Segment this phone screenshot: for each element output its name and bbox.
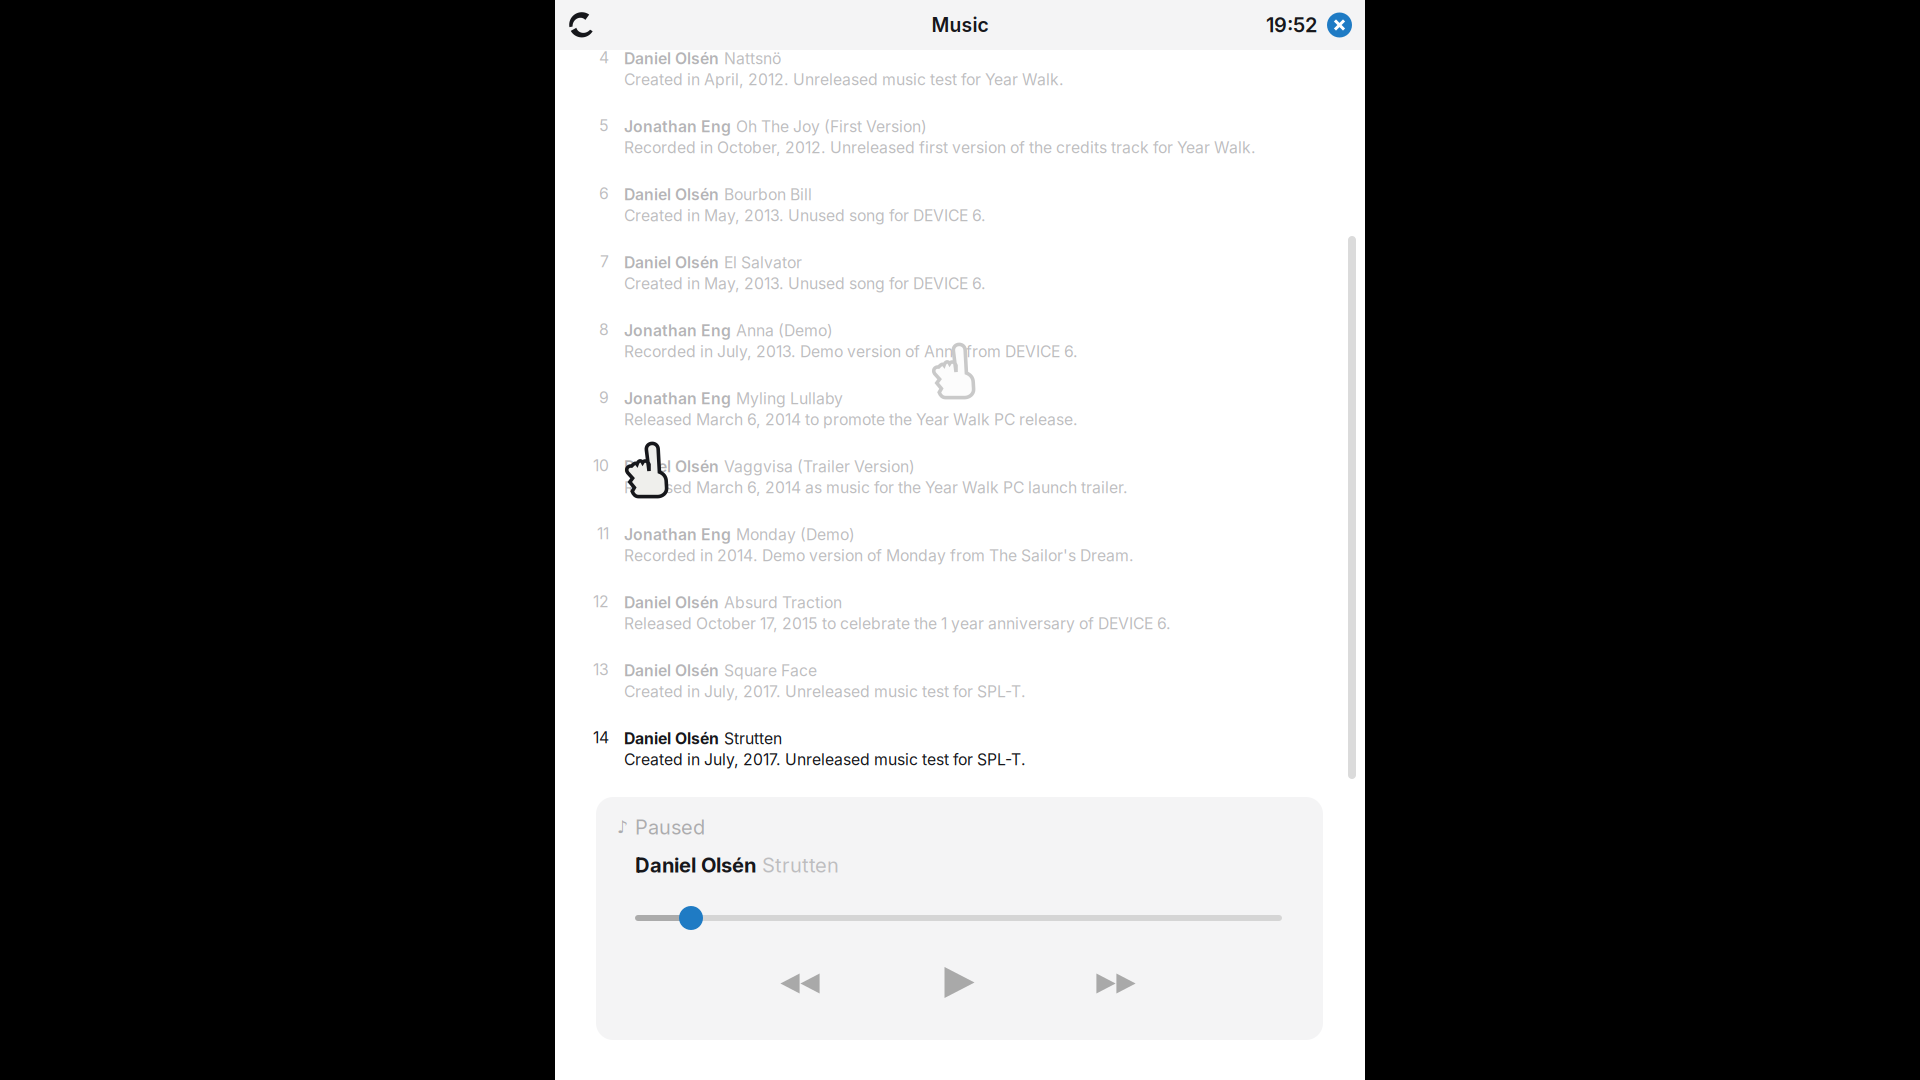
- staticText: Jonathan Eng: [624, 525, 731, 544]
- button[interactable]: Next track: [1080, 957, 1152, 1010]
- staticText: 14: [593, 728, 609, 747]
- button[interactable]: 7: [592, 252, 1345, 320]
- staticText: Paused: [635, 815, 705, 839]
- button[interactable]: 10: [592, 456, 1345, 524]
- staticText: 10: [593, 456, 609, 475]
- staticText: Recorded in July, 2013. Demo version of …: [624, 342, 1078, 361]
- staticText: Released October 17, 2015 to celebrate t…: [624, 614, 1171, 633]
- button[interactable]: 6: [592, 184, 1345, 252]
- staticText: Daniel Olsén: [624, 49, 719, 68]
- staticText: ♪: [617, 817, 628, 837]
- staticText: 7: [600, 252, 609, 271]
- staticText: Nattsnö: [724, 49, 781, 68]
- staticText: Released March 6, 2014 to promote the Ye…: [624, 410, 1078, 429]
- staticText: Released March 6, 2014 as music for the …: [624, 478, 1128, 497]
- button[interactable]: 5: [592, 116, 1345, 184]
- staticText: Daniel Olsén: [624, 253, 719, 272]
- staticText: Bourbon Bill: [724, 185, 812, 204]
- button[interactable]: 13: [592, 660, 1345, 728]
- staticText: 5: [599, 116, 609, 135]
- staticText: Myling Lullaby: [736, 389, 843, 408]
- staticText: Daniel Olsén: [624, 457, 719, 476]
- staticText: El Salvator: [724, 253, 802, 272]
- staticText: 13: [593, 660, 609, 679]
- staticText: Anna (Demo): [736, 321, 833, 340]
- staticText: Recorded in October, 2012. Unreleased fi…: [624, 138, 1256, 157]
- staticText: Strutten: [762, 853, 839, 877]
- button[interactable]: Play: [927, 950, 992, 1015]
- button[interactable]: 8: [592, 320, 1345, 388]
- staticText: Daniel Olsén: [624, 593, 719, 612]
- staticText: Square Face: [724, 661, 817, 680]
- staticText: 19:52: [1266, 13, 1317, 37]
- staticText: Jonathan Eng: [624, 389, 731, 408]
- button[interactable]: Previous track: [764, 957, 836, 1010]
- staticText: Daniel Olsén: [624, 661, 719, 680]
- button[interactable]: Reload: [555, 0, 605, 50]
- staticText: 8: [599, 320, 609, 339]
- button[interactable]: 14: [592, 728, 1345, 796]
- staticText: Jonathan Eng: [624, 321, 731, 340]
- staticText: Monday (Demo): [736, 525, 855, 544]
- staticText: 6: [599, 184, 609, 203]
- staticText: Created in May, 2013. Unused song for DE…: [624, 206, 986, 225]
- staticText: Oh The Joy (First Version): [736, 117, 927, 136]
- staticText: Recorded in 2014. Demo version of Monday…: [624, 546, 1134, 565]
- staticText: Created in July, 2017. Unreleased music …: [624, 750, 1026, 769]
- staticText: Music: [931, 13, 988, 37]
- staticText: 12: [593, 592, 609, 611]
- staticText: Daniel Olsén: [624, 185, 719, 204]
- button[interactable]: Playback position: [635, 906, 1282, 930]
- staticText: Created in May, 2013. Unused song for DE…: [624, 274, 986, 293]
- staticText: Created in July, 2017. Unreleased music …: [624, 682, 1026, 701]
- staticText: 11: [597, 524, 609, 543]
- staticText: Vaggvisa (Trailer Version): [724, 457, 915, 476]
- staticText: Daniel Olsén: [635, 853, 756, 877]
- button[interactable]: 4: [592, 48, 1345, 116]
- staticText: Strutten: [724, 729, 782, 748]
- staticText: Daniel Olsén: [624, 729, 719, 748]
- button[interactable]: 11: [592, 524, 1345, 592]
- button[interactable]: 9: [592, 388, 1345, 456]
- staticText: Jonathan Eng: [624, 117, 731, 136]
- staticText: Created in April, 2012. Unreleased music…: [624, 70, 1064, 89]
- staticText: 4: [599, 48, 609, 67]
- button[interactable]: Close: [1317, 0, 1365, 50]
- button[interactable]: 12: [592, 592, 1345, 660]
- staticText: Absurd Traction: [724, 593, 842, 612]
- staticText: 9: [599, 388, 609, 407]
